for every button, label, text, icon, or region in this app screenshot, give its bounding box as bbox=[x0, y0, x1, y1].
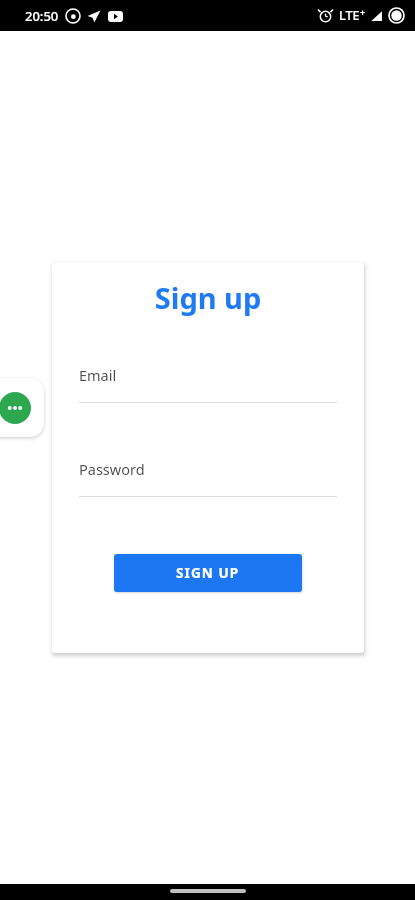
button[interactable]: More options bbox=[0, 378, 44, 437]
staticText: Sign up bbox=[52, 278, 364, 317]
button[interactable]: Email bbox=[79, 365, 337, 403]
staticText: Email bbox=[79, 365, 117, 385]
button[interactable]: SIGN UP bbox=[114, 554, 302, 592]
staticText: LTE bbox=[339, 7, 360, 24]
staticText: 20:50 bbox=[25, 7, 59, 25]
staticText: Password bbox=[79, 459, 145, 479]
staticText: + bbox=[360, 6, 366, 18]
button[interactable]: Password bbox=[79, 459, 337, 497]
staticText: SIGN UP bbox=[176, 564, 240, 582]
